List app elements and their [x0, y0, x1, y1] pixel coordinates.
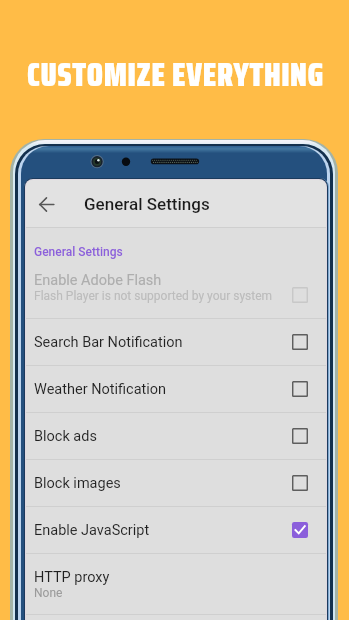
staticText: Block ads — [34, 428, 97, 445]
button[interactable]: Enable JavaScript — [26, 507, 326, 553]
button[interactable]: Toggle — [284, 467, 316, 499]
button[interactable]: HTTP proxy — [26, 554, 326, 614]
button[interactable]: Toggle — [284, 420, 316, 452]
button[interactable]: Toggle — [284, 373, 316, 405]
staticText: CUSTOMIZE EVERYTHING — [1, 50, 349, 100]
staticText: Enable Adobe Flash — [34, 272, 162, 289]
staticText: Search Bar Notification — [34, 334, 183, 351]
staticText: General Settings — [34, 245, 123, 259]
button[interactable]: Toggle — [284, 514, 316, 546]
button[interactable]: Toggle — [284, 326, 316, 358]
staticText: Block images — [34, 475, 121, 492]
button[interactable]: Weather Notification — [26, 366, 326, 412]
button[interactable]: Toggle — [284, 279, 316, 311]
button[interactable]: Back — [27, 185, 65, 223]
staticText: Flash Player is not supported by your sy… — [34, 289, 273, 303]
staticText: HTTP proxy — [34, 569, 110, 586]
button[interactable]: Enable Adobe Flash — [26, 271, 326, 318]
staticText: Weather Notification — [34, 381, 167, 398]
button[interactable]: Search Bar Notification — [26, 319, 326, 365]
button[interactable]: Block ads — [26, 413, 326, 459]
staticText: None — [34, 586, 63, 600]
staticText: Enable JavaScript — [34, 522, 150, 539]
button[interactable]: Block images — [26, 460, 326, 506]
staticText: General Settings — [84, 194, 210, 214]
